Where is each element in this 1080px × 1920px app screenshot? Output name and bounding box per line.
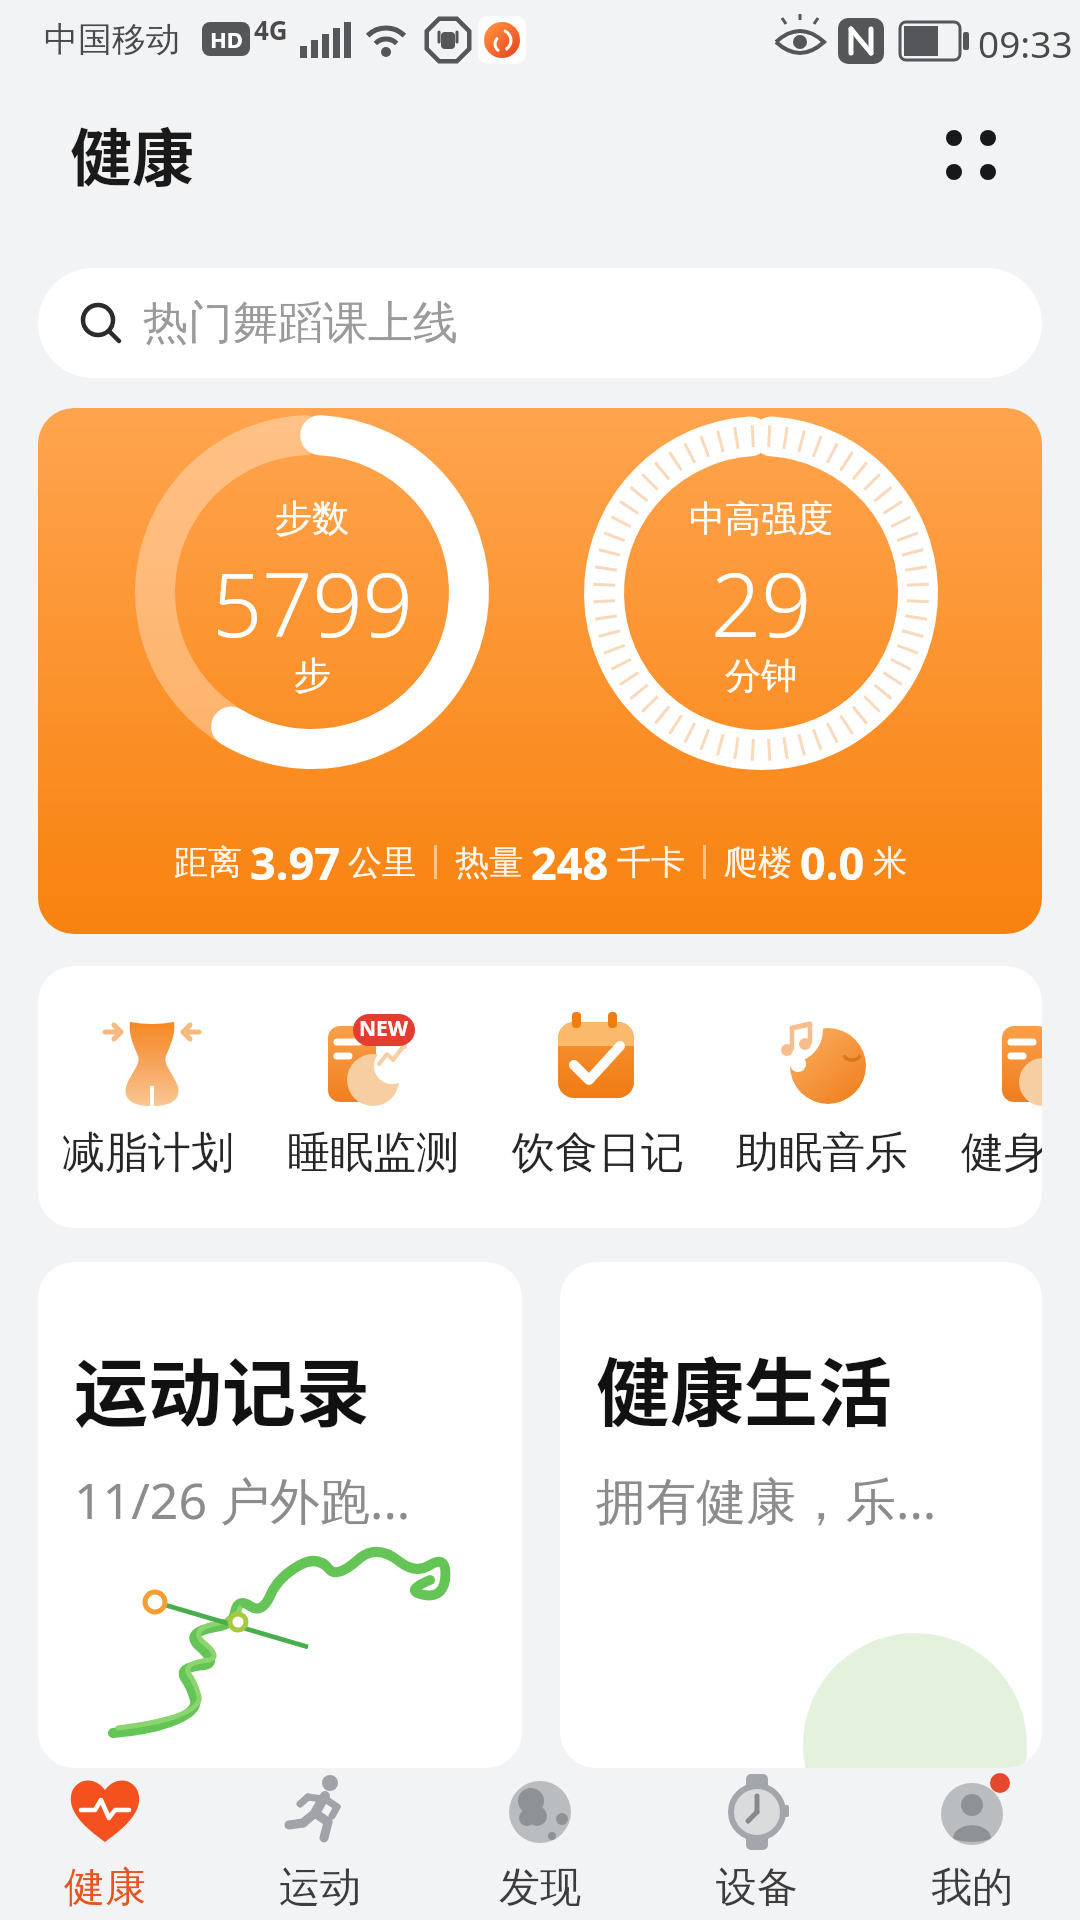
staticText: 千卡 — [617, 841, 685, 884]
staticText: 分钟 — [725, 653, 797, 698]
staticText: 11/26 户外跑... — [74, 1466, 411, 1534]
button[interactable]: 发现 — [460, 1768, 620, 1920]
button[interactable] — [930, 120, 1010, 190]
staticText: 3.97 — [250, 832, 340, 892]
button[interactable]: 我的 — [892, 1768, 1052, 1920]
staticText: 健身教程 — [961, 1126, 1042, 1180]
staticText: 饮食日记 — [512, 1126, 684, 1180]
button[interactable]: 健康 — [25, 1768, 185, 1920]
staticText: 0.0 — [800, 832, 865, 892]
button[interactable]: 减脂计划 — [53, 986, 243, 1208]
staticText: 减脂计划 — [62, 1126, 234, 1180]
staticText: 热门舞蹈课上线 — [143, 295, 458, 352]
button[interactable]: 步数 — [38, 408, 1042, 934]
staticText: 我的 — [931, 1862, 1013, 1914]
staticText: 公里 — [348, 841, 416, 884]
staticText: 运动 — [279, 1862, 361, 1914]
staticText: 09:33 — [978, 18, 1073, 64]
staticText: 步数 — [275, 495, 349, 542]
staticText: HD — [210, 24, 243, 54]
staticText: NEW — [359, 1014, 409, 1043]
staticText: 29 — [711, 543, 812, 653]
staticText: 5799 — [212, 543, 413, 653]
staticText: 发现 — [499, 1862, 581, 1914]
button[interactable]: 健身教程 — [952, 986, 1042, 1208]
button[interactable]: 饮食日记 — [503, 986, 693, 1208]
button[interactable]: 助眠音乐 — [727, 986, 917, 1208]
staticText: 健康 — [64, 1862, 146, 1914]
staticText: 中高强度 — [689, 496, 833, 541]
staticText: 米 — [873, 841, 907, 884]
staticText: 设备 — [716, 1862, 798, 1914]
button[interactable]: NEW — [278, 986, 468, 1208]
staticText: 248 — [531, 832, 609, 892]
staticText: 步 — [294, 652, 331, 699]
staticText: 助眠音乐 — [736, 1126, 908, 1180]
staticText: 健康 — [70, 109, 195, 199]
staticText: 热量 — [455, 841, 523, 884]
staticText: 健康生活 — [596, 1334, 892, 1434]
staticText: 4G — [254, 12, 288, 42]
button[interactable]: 运动记录 — [38, 1262, 522, 1768]
button[interactable]: 热门舞蹈课上线 — [38, 268, 1042, 378]
staticText: 中国移动 — [44, 18, 180, 60]
staticText: 爬楼 — [724, 841, 792, 884]
button[interactable]: 设备 — [677, 1768, 837, 1920]
button[interactable]: 健康生活 — [560, 1262, 1042, 1768]
button[interactable]: 运动 — [240, 1768, 400, 1920]
staticText: 运动记录 — [74, 1334, 370, 1434]
staticText: 睡眠监测 — [287, 1126, 459, 1180]
staticText: 拥有健康，乐... — [596, 1466, 937, 1534]
staticText: 距离 — [174, 841, 242, 884]
